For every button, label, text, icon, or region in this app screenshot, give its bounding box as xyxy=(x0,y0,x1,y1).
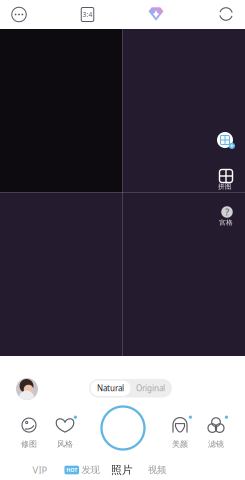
button[interactable]: 美颜 xyxy=(163,418,197,448)
button[interactable]: 风格 xyxy=(48,418,82,448)
staticText: 滤镜 xyxy=(208,439,224,449)
button[interactable]: 视频 xyxy=(142,461,172,479)
button[interactable]: Aspect ratio 3 by 4 xyxy=(72,0,102,29)
button[interactable]: Help xyxy=(214,204,240,220)
staticText: 3:4 xyxy=(82,10,92,19)
button[interactable]: Take photo xyxy=(97,402,149,454)
staticText: 视频 xyxy=(148,464,166,476)
button[interactable]: Collage xyxy=(212,129,238,151)
staticText: 美颜 xyxy=(172,439,188,449)
button[interactable]: More options xyxy=(4,0,34,29)
staticText: 照片 xyxy=(111,463,133,476)
staticText: ? xyxy=(225,206,229,218)
button[interactable]: Flip camera xyxy=(211,0,241,28)
staticText: VIP xyxy=(32,464,47,476)
staticText: 发现 xyxy=(82,464,100,476)
staticText: 修图 xyxy=(21,439,37,449)
button[interactable]: Profile xyxy=(13,375,41,403)
staticText: Natural xyxy=(97,383,124,393)
button[interactable]: VIP xyxy=(25,461,55,479)
staticText: 拼图 xyxy=(218,182,232,191)
staticText: HOT xyxy=(66,466,77,474)
button[interactable]: 滤镜 xyxy=(199,418,233,448)
button[interactable]: Natural xyxy=(90,380,130,396)
staticText: 宫格 xyxy=(219,218,233,227)
button[interactable]: Premium effects xyxy=(141,0,171,28)
button[interactable]: Grid xyxy=(213,167,239,185)
button[interactable]: HOT xyxy=(61,461,103,479)
staticText: Original xyxy=(136,383,165,393)
staticText: 风格 xyxy=(57,439,73,449)
button[interactable]: Original xyxy=(130,380,170,396)
button[interactable]: 修图 xyxy=(12,418,46,448)
button[interactable]: 照片 xyxy=(107,461,137,479)
